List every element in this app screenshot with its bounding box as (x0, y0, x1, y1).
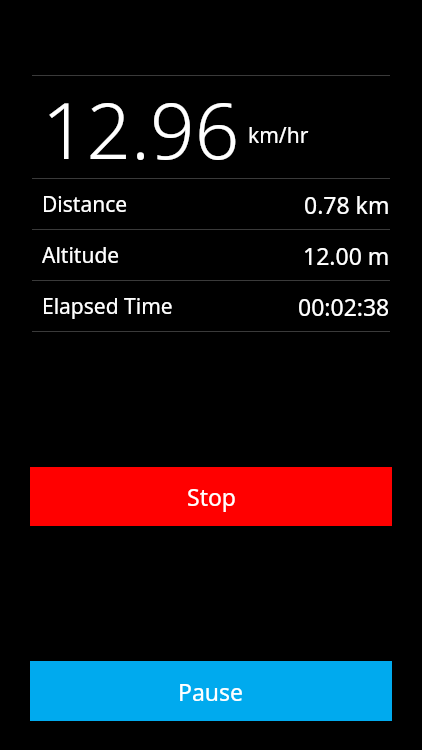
staticText: Altitude (42, 241, 120, 270)
button[interactable]: Elapsed Time (32, 281, 390, 331)
staticText: 12.00 m (303, 240, 390, 271)
staticText: Distance (42, 190, 128, 219)
button[interactable]: Stop (30, 467, 392, 526)
staticText: 0.78 km (304, 189, 390, 220)
staticText: km/hr (248, 121, 309, 150)
button[interactable]: Pause (30, 661, 392, 721)
staticText: 00:02:38 (298, 291, 390, 322)
button[interactable]: Altitude (32, 230, 390, 280)
staticText: Elapsed Time (42, 292, 173, 321)
staticText: 12.96 (42, 76, 240, 163)
staticText: Stop (187, 481, 236, 512)
button[interactable]: Distance (32, 179, 390, 229)
staticText: Pause (178, 676, 244, 707)
